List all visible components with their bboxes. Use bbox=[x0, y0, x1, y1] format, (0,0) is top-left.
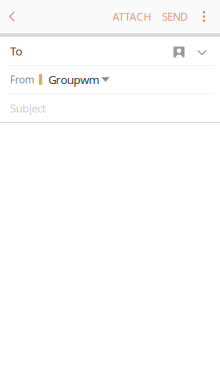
staticText: ATTACH bbox=[112, 9, 151, 24]
staticText: Groupwm bbox=[48, 72, 100, 87]
staticText: Subject bbox=[10, 100, 46, 116]
button[interactable]: Back bbox=[0, 0, 24, 33]
staticText: To bbox=[10, 43, 22, 59]
button[interactable]: More options bbox=[188, 0, 220, 33]
staticText: SEND bbox=[162, 9, 188, 24]
button[interactable]: Choose contact bbox=[170, 37, 188, 65]
button[interactable]: SEND bbox=[155, 0, 188, 33]
button[interactable]: Show Cc and Bcc bbox=[194, 37, 210, 65]
button[interactable]: To bbox=[0, 37, 170, 65]
button[interactable]: ATTACH bbox=[109, 0, 155, 33]
button[interactable]: Subject bbox=[0, 94, 220, 122]
staticText: From bbox=[10, 73, 34, 86]
button[interactable]: From bbox=[0, 66, 220, 93]
